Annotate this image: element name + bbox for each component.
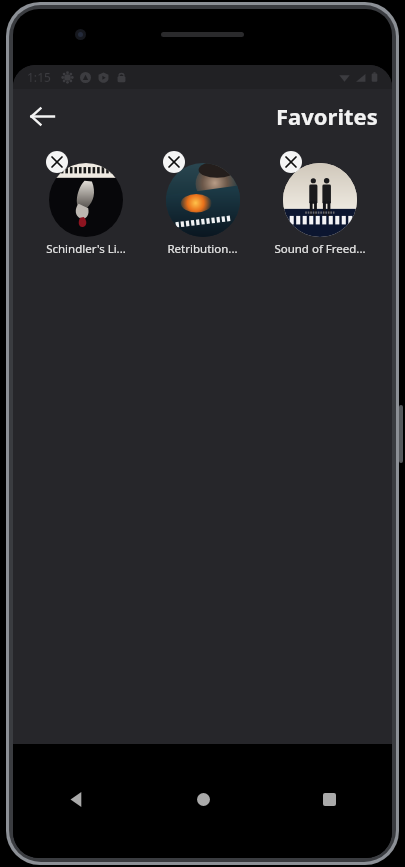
staticText: Schindler's Li... xyxy=(46,241,126,257)
staticText: Sound of Freed... xyxy=(274,241,366,257)
button[interactable]: Remove Schindler's Li... xyxy=(27,149,144,259)
button[interactable]: Remove Sound of Freed... xyxy=(261,149,378,259)
staticText: 1:15 xyxy=(27,69,51,85)
staticText: Retribution... xyxy=(167,241,238,257)
button[interactable]: Remove Retribution... xyxy=(144,149,261,259)
button[interactable]: Remove Schindler's Li... xyxy=(46,151,68,173)
button[interactable]: Remove Retribution... xyxy=(163,151,185,173)
button[interactable]: Back xyxy=(13,776,140,822)
staticText: Favorites xyxy=(276,101,378,131)
button[interactable]: Back xyxy=(21,95,63,137)
button[interactable]: Recent apps xyxy=(266,776,392,822)
button[interactable]: Remove Sound of Freed... xyxy=(280,151,302,173)
button[interactable]: Home xyxy=(140,776,266,822)
